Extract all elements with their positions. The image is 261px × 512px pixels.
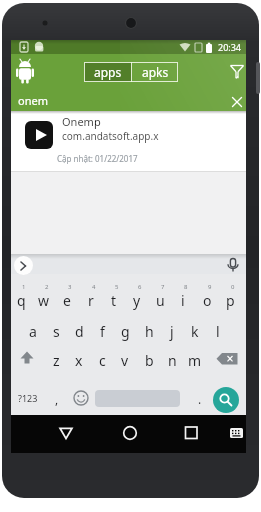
button[interactable]: e: [56, 290, 78, 310]
staticText: 9: [208, 283, 212, 291]
button[interactable]: apks: [132, 62, 178, 82]
staticText: e: [63, 291, 71, 310]
button[interactable]: [213, 387, 239, 413]
staticText: 0: [231, 283, 235, 291]
staticText: m: [188, 351, 202, 370]
staticText: g: [121, 322, 130, 341]
staticText: ?123: [18, 392, 38, 404]
staticText: Cập nhật: 01/22/2017: [57, 153, 138, 164]
staticText: h: [145, 322, 154, 341]
button[interactable]: ?123: [15, 389, 41, 407]
button[interactable]: j: [161, 321, 183, 341]
staticText: 5: [115, 283, 119, 291]
staticText: 3: [68, 283, 72, 291]
button[interactable]: [14, 346, 40, 368]
button[interactable]: r: [80, 290, 102, 310]
staticText: 4: [92, 283, 96, 291]
button[interactable]: [54, 423, 78, 443]
staticText: z: [53, 351, 60, 370]
staticText: u: [156, 291, 165, 310]
staticText: b: [145, 351, 154, 370]
button[interactable]: t: [103, 290, 125, 310]
staticText: f: [100, 322, 105, 341]
button[interactable]: ,: [51, 390, 63, 408]
staticText: ,: [55, 391, 59, 407]
staticText: y: [133, 291, 141, 310]
button[interactable]: b: [138, 350, 160, 370]
staticText: n: [168, 351, 177, 370]
button[interactable]: x: [68, 350, 90, 370]
button[interactable]: i: [172, 290, 194, 310]
staticText: apps: [94, 64, 122, 80]
button[interactable]: [118, 423, 142, 443]
staticText: 2: [45, 283, 49, 291]
button[interactable]: q: [10, 290, 32, 310]
staticText: 1: [22, 283, 26, 291]
button[interactable]: d: [68, 321, 90, 341]
staticText: 7: [161, 283, 165, 291]
button[interactable]: .: [194, 390, 206, 408]
button[interactable]: [179, 423, 203, 443]
staticText: Onemp: [62, 114, 101, 129]
button[interactable]: [228, 425, 246, 441]
button[interactable]: [228, 93, 246, 111]
staticText: v: [121, 351, 129, 370]
staticText: w: [38, 291, 50, 310]
button[interactable]: [14, 256, 33, 275]
button[interactable]: [11, 111, 246, 172]
staticText: o: [203, 291, 212, 310]
staticText: a: [29, 322, 37, 341]
button[interactable]: v: [114, 350, 136, 370]
button[interactable]: s: [45, 321, 67, 341]
staticText: p: [226, 291, 235, 310]
button[interactable]: h: [138, 321, 160, 341]
button[interactable]: u: [149, 290, 171, 310]
button[interactable]: apps: [84, 62, 131, 82]
staticText: 20:34: [218, 41, 242, 53]
button[interactable]: l: [207, 321, 229, 341]
staticText: onem: [18, 93, 48, 108]
button[interactable]: p: [219, 290, 241, 310]
button[interactable]: m: [184, 350, 206, 370]
staticText: i: [181, 291, 185, 310]
staticText: k: [191, 322, 199, 341]
staticText: l: [216, 322, 220, 341]
staticText: 6: [138, 283, 142, 291]
button[interactable]: c: [91, 350, 113, 370]
button[interactable]: [216, 346, 244, 368]
button[interactable]: y: [126, 290, 148, 310]
button[interactable]: g: [114, 321, 136, 341]
staticText: x: [75, 351, 83, 370]
staticText: t: [111, 291, 117, 310]
button[interactable]: k: [184, 321, 206, 341]
staticText: .: [198, 391, 202, 407]
staticText: apks: [142, 64, 169, 80]
button[interactable]: n: [161, 350, 183, 370]
button[interactable]: a: [22, 321, 44, 341]
button[interactable]: f: [91, 321, 113, 341]
staticText: d: [75, 322, 84, 341]
staticText: 8: [184, 283, 188, 291]
button[interactable]: w: [33, 290, 55, 310]
staticText: com.andatsoft.app.x: [62, 129, 159, 143]
staticText: c: [99, 351, 106, 370]
staticText: q: [17, 291, 26, 310]
staticText: s: [53, 322, 60, 341]
staticText: j: [170, 322, 174, 341]
button[interactable]: o: [196, 290, 218, 310]
button[interactable]: z: [45, 350, 67, 370]
staticText: r: [88, 291, 94, 310]
button[interactable]: [227, 62, 247, 82]
button[interactable]: [72, 389, 90, 407]
